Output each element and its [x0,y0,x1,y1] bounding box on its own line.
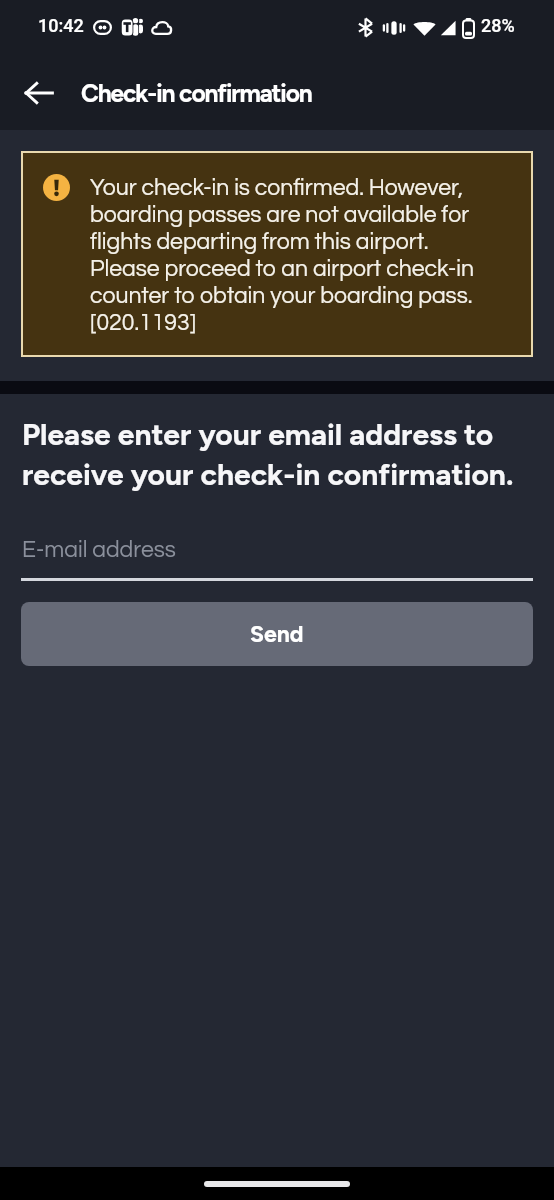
staticText: 10:42 [38,15,84,36]
staticText: Your check-in is confirmed. However, boa… [90,176,488,335]
staticText: Please enter your email address to recei… [22,416,538,492]
staticText: Check-in confirmation [81,79,312,108]
staticText: Send [250,620,304,648]
button[interactable]: Back [17,71,61,115]
staticText: E-mail address [22,538,176,562]
staticText: 28% [481,15,515,36]
button[interactable]: Send [21,602,533,666]
